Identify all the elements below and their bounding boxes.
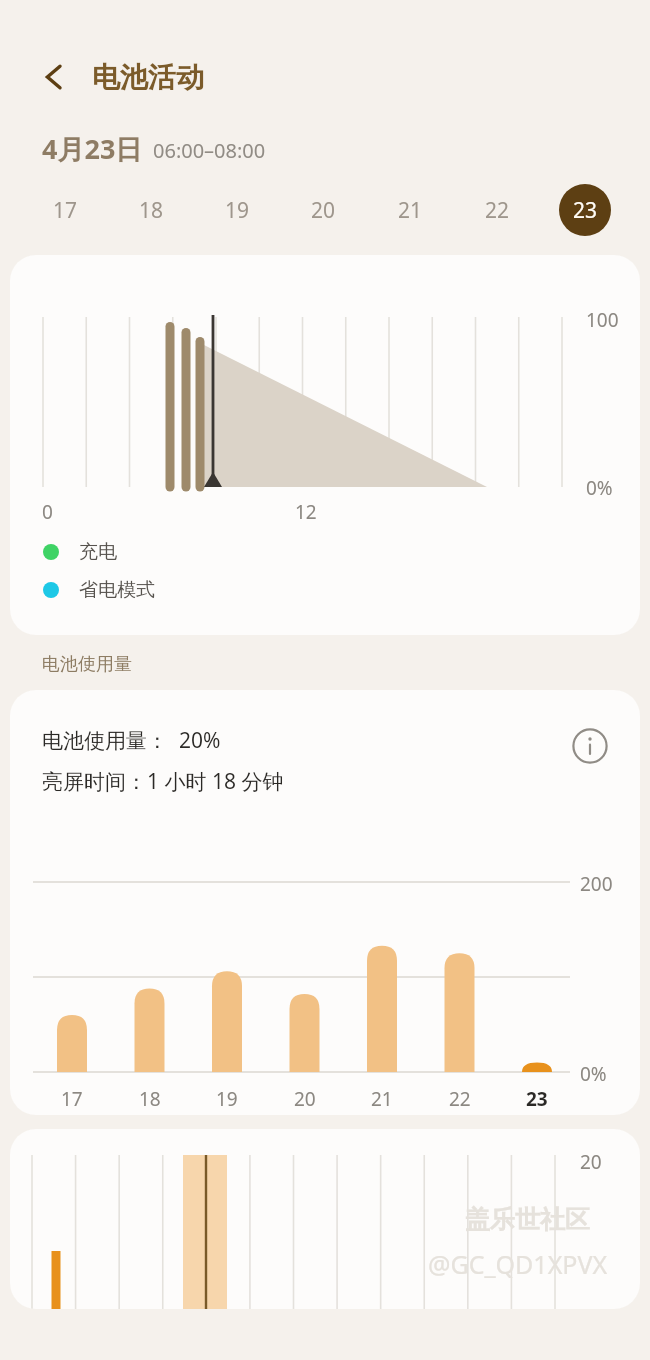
staticText: 电池使用量： 20% — [42, 726, 221, 755]
staticText: 0% — [580, 1061, 607, 1087]
button[interactable]: 17 — [22, 183, 108, 237]
staticText: 06:00–08:00 — [153, 137, 266, 164]
staticText: 20 — [294, 1086, 316, 1112]
staticText: 17 — [53, 196, 78, 225]
button[interactable]: 信息 — [566, 722, 614, 770]
staticText: 18 — [139, 1086, 161, 1112]
staticText: 12 — [295, 499, 317, 525]
staticText: 0% — [586, 475, 613, 501]
button[interactable]: 21 — [367, 183, 454, 237]
button[interactable]: 23 — [541, 183, 628, 237]
staticText: 20 — [311, 196, 336, 225]
button[interactable]: 20 — [280, 183, 367, 237]
staticText: 亮屏时间：1 小时 18 分钟 — [42, 767, 284, 796]
staticText: 19 — [216, 1086, 238, 1112]
button[interactable]: 省电模式 — [43, 578, 155, 602]
staticText: 电池使用量 — [42, 653, 132, 676]
button[interactable]: 充电 — [43, 540, 117, 564]
staticText: 20 — [580, 1149, 602, 1175]
staticText: 22 — [485, 196, 510, 225]
staticText: 18 — [139, 196, 164, 225]
staticText: 200 — [580, 871, 613, 897]
staticText: 盖乐世社区 — [465, 1204, 590, 1235]
staticText: 21 — [371, 1086, 393, 1112]
button[interactable]: 22 — [454, 183, 541, 237]
staticText: 19 — [225, 196, 250, 225]
staticText: @GC_QD1XPVX — [428, 1247, 608, 1281]
staticText: 100 — [586, 307, 619, 333]
staticText: 23 — [573, 196, 598, 225]
staticText: 21 — [398, 196, 423, 225]
button[interactable]: 100 — [10, 255, 640, 635]
button[interactable]: 返回 — [28, 51, 80, 103]
staticText: 22 — [449, 1086, 471, 1112]
staticText: 23 — [526, 1086, 548, 1112]
staticText: 电池活动 — [92, 60, 204, 95]
staticText: 4月23日 — [42, 130, 143, 167]
button[interactable]: 19 — [194, 183, 280, 237]
staticText: 0 — [42, 499, 53, 525]
staticText: 17 — [61, 1086, 83, 1112]
button[interactable]: 18 — [108, 183, 194, 237]
staticText: 充电 — [79, 540, 117, 564]
staticText: 省电模式 — [79, 578, 155, 602]
